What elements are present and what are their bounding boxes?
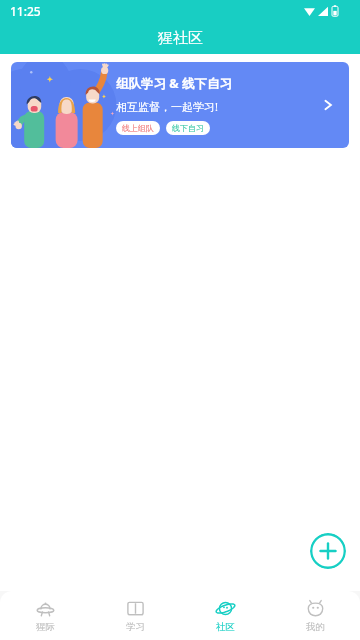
button[interactable]: 新建 (310, 533, 346, 569)
other: 查看详情 (320, 97, 336, 113)
staticText: 猩际 (36, 621, 55, 633)
staticText: 社区 (216, 621, 235, 633)
button[interactable]: 组队学习 & 线下自习 (11, 62, 349, 148)
staticText: 线上组队 (122, 123, 154, 133)
staticText: 学习 (126, 621, 145, 633)
staticText: 11:25 (10, 3, 41, 19)
staticText: 相互监督，一起学习! (116, 99, 218, 114)
staticText: 我的 (306, 621, 325, 633)
button[interactable]: 学习 (90, 591, 180, 640)
staticText: 线下自习 (172, 123, 204, 133)
staticText: 组队学习 & 线下自习 (116, 75, 232, 92)
staticText: 猩社区 (158, 29, 203, 48)
button[interactable]: 猩际 (0, 591, 90, 640)
button[interactable]: 社区 (180, 591, 270, 640)
button[interactable]: 我的 (270, 591, 360, 640)
